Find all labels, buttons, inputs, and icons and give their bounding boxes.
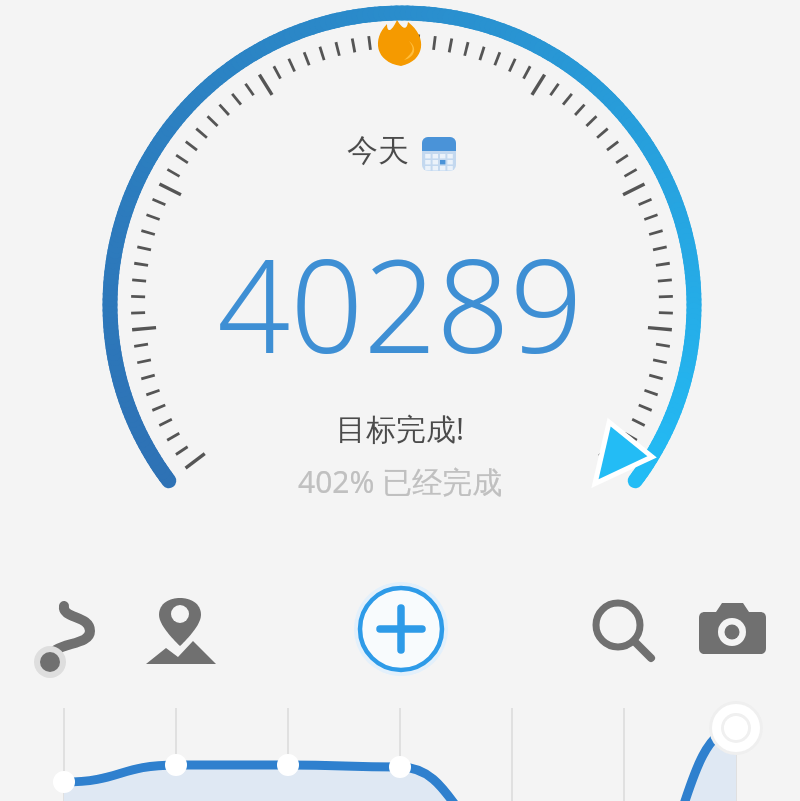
staticText: 402% 已经完成 xyxy=(298,461,503,502)
staticText: 今天 xyxy=(347,131,409,170)
staticText: 40289 xyxy=(217,216,583,390)
button[interactable]: Route xyxy=(32,596,104,668)
staticText: 目标完成! xyxy=(336,408,465,449)
button[interactable]: Camera xyxy=(698,596,770,668)
button[interactable]: Search xyxy=(589,596,661,668)
button[interactable]: Places xyxy=(146,596,218,668)
button[interactable]: Add xyxy=(354,582,448,676)
